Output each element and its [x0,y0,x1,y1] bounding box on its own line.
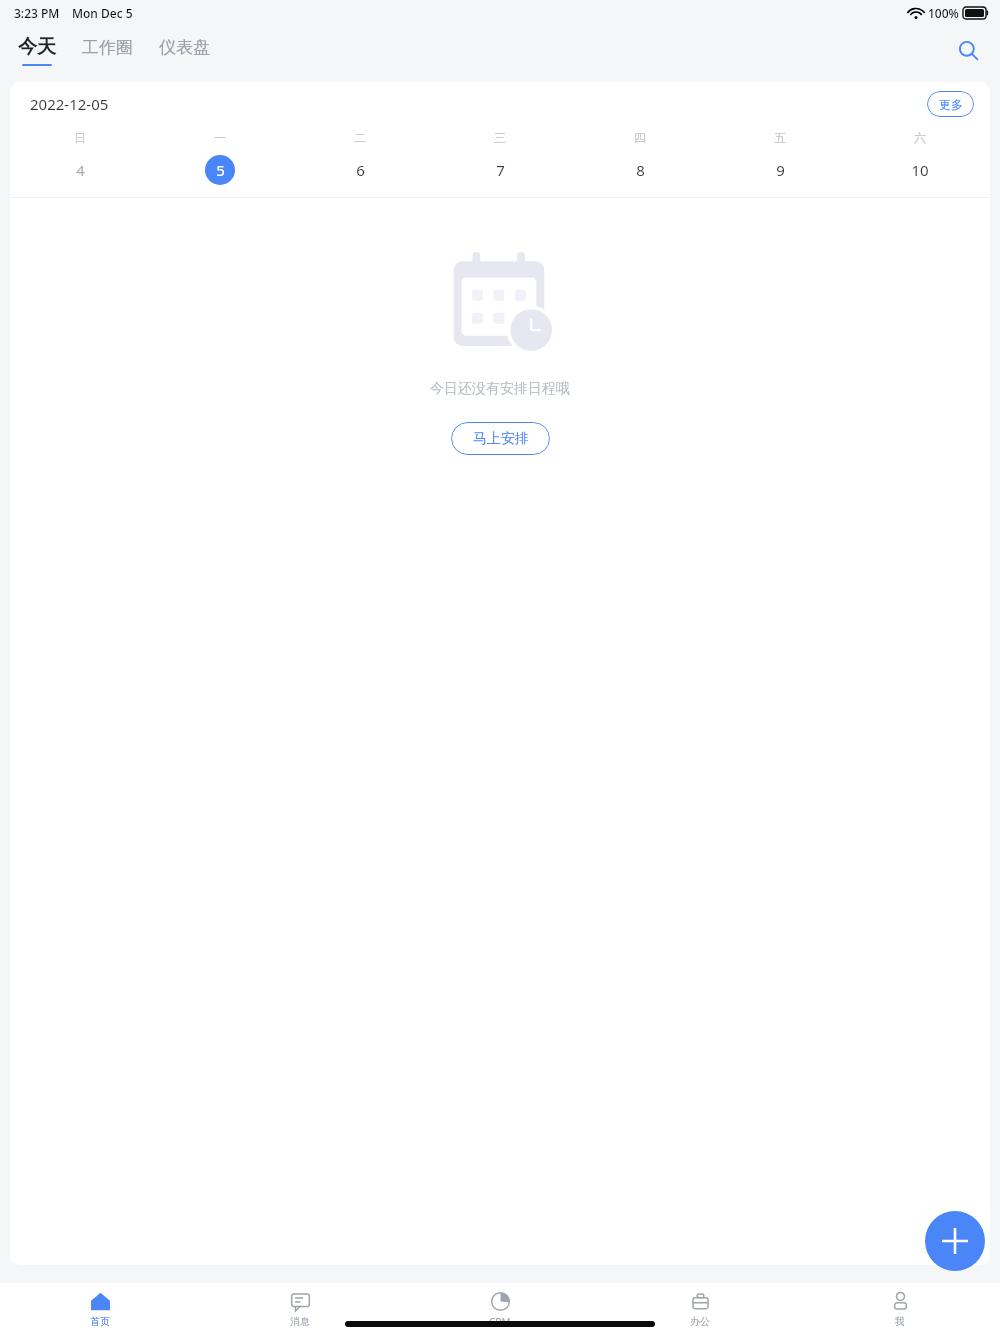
button[interactable]: 搜索 [950,32,986,68]
button[interactable]: 三 [430,130,570,185]
button[interactable]: 仪表盘 [157,37,212,65]
button[interactable]: 马上安排 [451,422,550,455]
staticText: 我 [895,1315,905,1328]
staticText: 100% [928,5,959,21]
staticText: 9 [776,160,785,180]
staticText: 10 [911,160,929,180]
staticText: 四 [634,130,646,145]
staticText: 今日还没有安排日程哦 [430,380,570,398]
staticText: 4 [76,160,85,180]
staticText: 马上安排 [473,430,529,448]
staticText: 五 [774,130,786,145]
staticText: Mon Dec 5 [72,5,133,21]
staticText: 5 [216,160,225,180]
button[interactable]: CRM [400,1283,600,1334]
button[interactable]: 二 [290,130,430,185]
staticText: 三 [494,130,506,145]
staticText: 今天 [18,35,56,59]
staticText: 一 [214,130,226,145]
staticText: 仪表盘 [159,37,210,58]
button[interactable]: 办公 [600,1283,800,1334]
staticText: 六 [914,130,926,145]
button[interactable]: 一 [150,130,290,185]
button[interactable]: 六 [850,130,990,185]
staticText: 消息 [290,1315,310,1328]
button[interactable]: 首页 [0,1283,200,1334]
button[interactable]: 消息 [200,1283,400,1334]
button[interactable]: 工作圈 [80,37,135,65]
button[interactable]: 四 [570,130,710,185]
staticText: 3:23 PM [14,5,60,21]
staticText: 7 [496,160,505,180]
button[interactable]: 五 [710,130,850,185]
staticText: 日 [74,130,86,145]
staticText: 2022-12-05 [30,94,109,114]
staticText: 工作圈 [82,37,133,58]
staticText: 6 [356,160,365,180]
button[interactable]: 更多 [927,91,974,117]
button[interactable]: 日 [10,130,150,185]
button[interactable]: 今天 [16,35,58,66]
staticText: 8 [636,160,645,180]
button[interactable]: 我 [800,1283,1000,1334]
staticText: 二 [354,130,366,145]
staticText: 办公 [690,1315,710,1328]
staticText: CRM [489,1315,511,1329]
staticText: 更多 [939,97,963,112]
staticText: 首页 [90,1315,110,1328]
button[interactable]: 新建 [925,1211,985,1271]
